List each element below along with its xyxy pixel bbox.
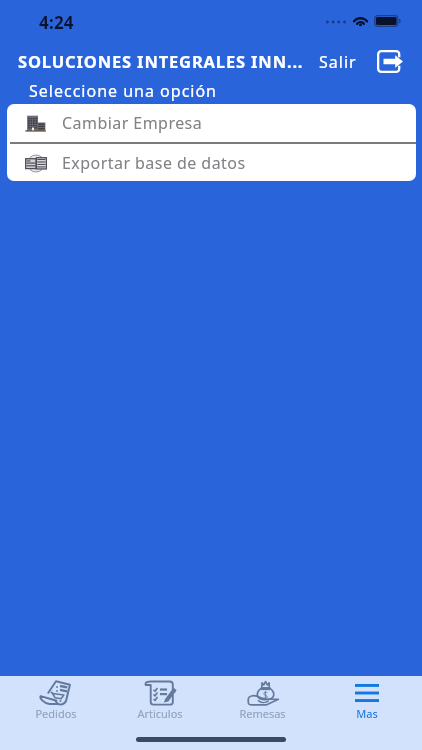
- staticText: Remesas: [239, 706, 286, 721]
- button[interactable]: Salir: [313, 46, 363, 78]
- staticText: Salir: [319, 51, 357, 73]
- button[interactable]: Mas: [319, 676, 414, 721]
- staticText: SOLUCIONES INTEGRALES INN...: [18, 50, 304, 72]
- staticText: Cambiar Empresa: [62, 112, 203, 134]
- staticText: Seleccione una opción: [29, 80, 218, 102]
- button[interactable]: Articulos: [112, 676, 207, 721]
- staticText: Pedidos: [35, 706, 77, 721]
- staticText: Mas: [356, 706, 378, 721]
- button[interactable]: Remesas: [215, 676, 310, 721]
- staticText: Articulos: [137, 706, 183, 721]
- button[interactable]: Pedidos: [8, 676, 103, 721]
- button[interactable]: Exportar base de datos: [7, 144, 416, 181]
- button[interactable]: Cambiar Empresa: [7, 104, 416, 142]
- button[interactable]: Salir: [375, 47, 405, 75]
- staticText: 4:24: [39, 11, 74, 34]
- staticText: Exportar base de datos: [62, 152, 246, 174]
